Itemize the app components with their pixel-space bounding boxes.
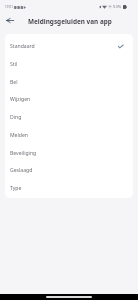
staticText: Wijzigen [10,96,31,103]
staticText: Geslaagd [10,167,33,174]
staticText: Type [10,185,22,192]
button[interactable]: Bel [5,72,133,90]
staticText: 17:01 [5,5,13,9]
button[interactable]: Standaard [5,36,133,54]
staticText: Stil [10,61,18,68]
button[interactable]: Type [5,178,133,196]
staticText: Ding [10,114,22,121]
button[interactable]: Beveiliging [5,143,133,161]
staticText: Beveiliging [10,150,37,157]
button[interactable]: Ding [5,107,133,125]
staticText: 53% [113,4,122,10]
button[interactable]: Terug [2,12,18,28]
staticText: Melden [10,132,28,139]
staticText: Standaard [10,43,35,50]
staticText: Meldingsgeluiden van app [28,17,112,26]
button[interactable]: Geslaagd [5,160,133,178]
staticText: Bel [10,79,18,86]
button[interactable]: Wijzigen [5,89,133,107]
button[interactable]: Melden [5,125,133,143]
button[interactable]: Stil [5,54,133,72]
